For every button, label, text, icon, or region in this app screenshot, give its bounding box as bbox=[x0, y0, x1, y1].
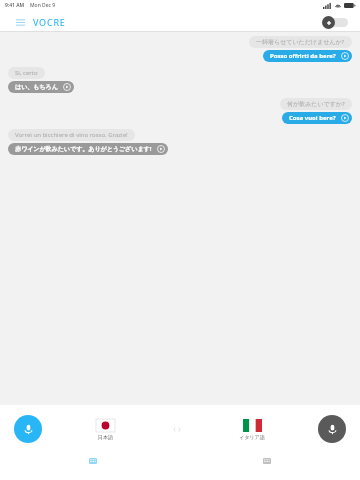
staticText: Vorrei un bicchiere di vino rosso. Grazi… bbox=[15, 131, 128, 139]
staticText: 一杯奢らせていただけませんか? bbox=[256, 38, 345, 46]
button[interactable]: Swap languages bbox=[168, 420, 186, 438]
button[interactable]: Posso offrirti da bere? bbox=[263, 50, 352, 62]
staticText: 9:41 AM bbox=[5, 2, 25, 9]
staticText: イタリア語 bbox=[239, 434, 265, 440]
button[interactable]: イタリア語 bbox=[237, 419, 267, 440]
staticText: はい、もちろん bbox=[15, 83, 58, 91]
button[interactable]: Add conversation bbox=[322, 14, 348, 30]
button[interactable]: 赤ワインが飲みたいです。ありがとうございます! bbox=[8, 143, 168, 155]
staticText: VOCRE bbox=[33, 16, 66, 28]
button[interactable]: Cosa vuoi bere? bbox=[282, 112, 352, 124]
staticText: 何が飲みたいですか? bbox=[287, 100, 345, 108]
button[interactable]: Italian keyboard bbox=[184, 453, 350, 468]
staticText: Posso offrirti da bere? bbox=[270, 52, 336, 60]
button[interactable]: Japanese keyboard bbox=[10, 453, 176, 468]
button[interactable]: はい、もちろん bbox=[8, 81, 74, 93]
button[interactable]: Record Italian bbox=[318, 415, 346, 443]
staticText: Cosa vuoi bere? bbox=[289, 114, 336, 122]
staticText: 日本語 bbox=[98, 434, 113, 440]
button[interactable]: Menu bbox=[12, 14, 28, 30]
button[interactable]: 日本語 bbox=[94, 419, 117, 440]
staticText: 赤ワインが飲みたいです。ありがとうございます! bbox=[15, 145, 152, 153]
staticText: Si, certo bbox=[15, 69, 38, 77]
staticText: Mon Dec 9 bbox=[30, 2, 56, 9]
button[interactable]: Record Japanese bbox=[14, 415, 42, 443]
